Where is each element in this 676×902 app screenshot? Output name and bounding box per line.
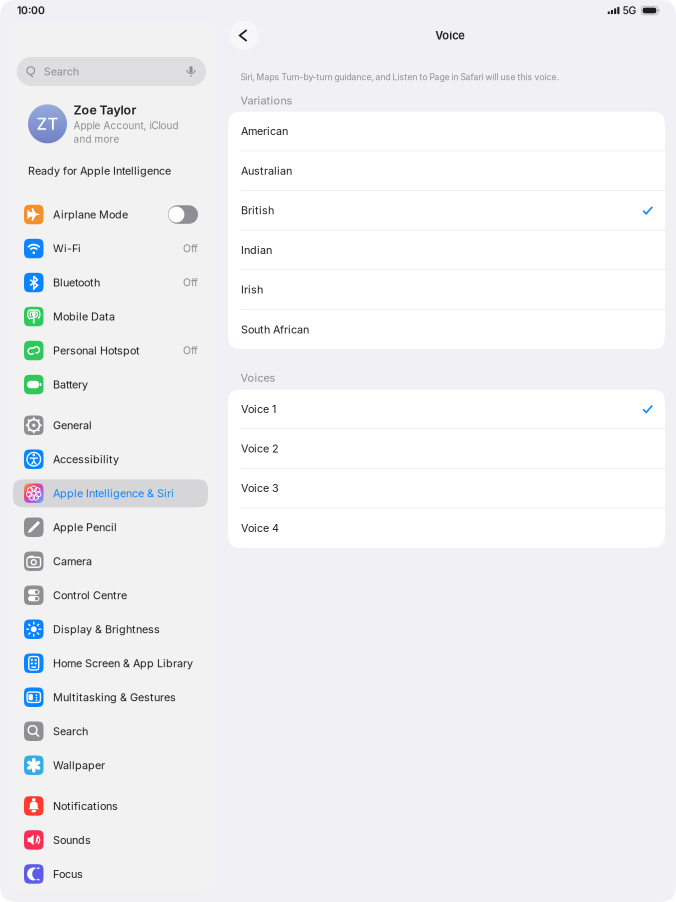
button[interactable]: Voice 1 — [228, 389, 665, 429]
staticText: Zoe Taylor — [73, 102, 136, 117]
button[interactable]: Display & Brightness — [13, 615, 208, 643]
staticText: Search — [44, 65, 79, 78]
staticText: Camera — [53, 555, 92, 568]
staticText: Battery — [53, 378, 88, 391]
staticText: British — [241, 204, 274, 217]
button[interactable]: American — [228, 112, 665, 151]
button[interactable]: Mobile Data — [13, 302, 208, 330]
staticText: Control Centre — [53, 589, 127, 602]
staticText: Voice 4 — [241, 522, 279, 535]
button[interactable]: Voice 2 — [228, 429, 665, 469]
button[interactable]: Camera — [13, 547, 208, 575]
staticText: Voice — [435, 29, 465, 42]
button[interactable]: Airplane Mode — [13, 200, 208, 228]
staticText: Personal Hotspot — [53, 344, 140, 357]
staticText: South African — [241, 323, 309, 336]
button[interactable]: Australian — [228, 151, 665, 191]
staticText: Irish — [241, 283, 263, 296]
staticText: Voice 2 — [241, 442, 279, 455]
button[interactable]: Sounds — [13, 826, 208, 854]
staticText: and more — [73, 133, 119, 145]
button[interactable]: South African — [228, 310, 665, 349]
button[interactable]: Battery — [13, 370, 208, 398]
staticText: Multitasking & Gestures — [53, 691, 176, 704]
button[interactable]: Search — [13, 717, 208, 745]
button[interactable]: Voice 3 — [228, 469, 665, 508]
button[interactable]: Control Centre — [13, 581, 208, 609]
button[interactable]: Wi-Fi — [13, 234, 208, 262]
staticText: 5G — [623, 4, 637, 17]
staticText: Off — [183, 242, 198, 255]
button[interactable]: Back — [229, 21, 258, 50]
button[interactable]: Apple Intelligence & Siri — [13, 479, 208, 507]
staticText: Australian — [241, 164, 292, 177]
button[interactable]: Personal Hotspot — [13, 336, 208, 364]
button[interactable]: Focus — [13, 860, 208, 888]
button[interactable]: Voice 4 — [228, 508, 665, 548]
button[interactable]: General — [13, 411, 208, 439]
staticText: Apple Intelligence & Siri — [53, 487, 174, 500]
button[interactable]: Bluetooth — [13, 268, 208, 296]
button[interactable]: Multitasking & Gestures — [13, 683, 208, 711]
staticText: Accessibility — [53, 453, 119, 466]
button[interactable]: Irish — [228, 270, 665, 310]
staticText: Mobile Data — [53, 310, 115, 323]
staticText: Voice 3 — [241, 482, 279, 495]
staticText: 10:00 — [17, 4, 45, 17]
staticText: American — [241, 125, 288, 138]
staticText: Display & Brightness — [53, 623, 160, 636]
staticText: Home Screen & App Library — [53, 657, 193, 670]
staticText: Voices — [240, 371, 275, 384]
staticText: Off — [183, 344, 198, 357]
staticText: Wallpaper — [53, 759, 105, 772]
staticText: ZT — [36, 114, 58, 134]
staticText: Bluetooth — [53, 276, 100, 289]
button[interactable]: Wallpaper — [13, 751, 208, 779]
staticText: Off — [183, 276, 198, 289]
button[interactable]: Notifications — [13, 792, 208, 820]
staticText: Ready for Apple Intelligence — [28, 164, 171, 177]
staticText: Search — [53, 725, 88, 738]
staticText: Sounds — [53, 833, 91, 846]
button[interactable]: British — [228, 191, 665, 230]
staticText: Indian — [241, 243, 272, 256]
staticText: Voice 1 — [241, 402, 276, 416]
button[interactable]: Accessibility — [13, 445, 208, 473]
button[interactable]: Indian — [228, 230, 665, 270]
staticText: Wi-Fi — [53, 242, 81, 255]
button[interactable]: Home Screen & App Library — [13, 649, 208, 677]
staticText: Apple Pencil — [53, 521, 117, 534]
staticText: Siri, Maps Turn-by-turn guidance, and Li… — [240, 72, 558, 82]
staticText: Notifications — [53, 799, 118, 812]
staticText: Apple Account, iCloud — [73, 120, 178, 132]
staticText: Airplane Mode — [53, 208, 128, 221]
staticText: Variations — [240, 94, 292, 107]
staticText: General — [53, 419, 92, 432]
button[interactable]: Apple Pencil — [13, 513, 208, 541]
staticText: Focus — [53, 867, 83, 880]
